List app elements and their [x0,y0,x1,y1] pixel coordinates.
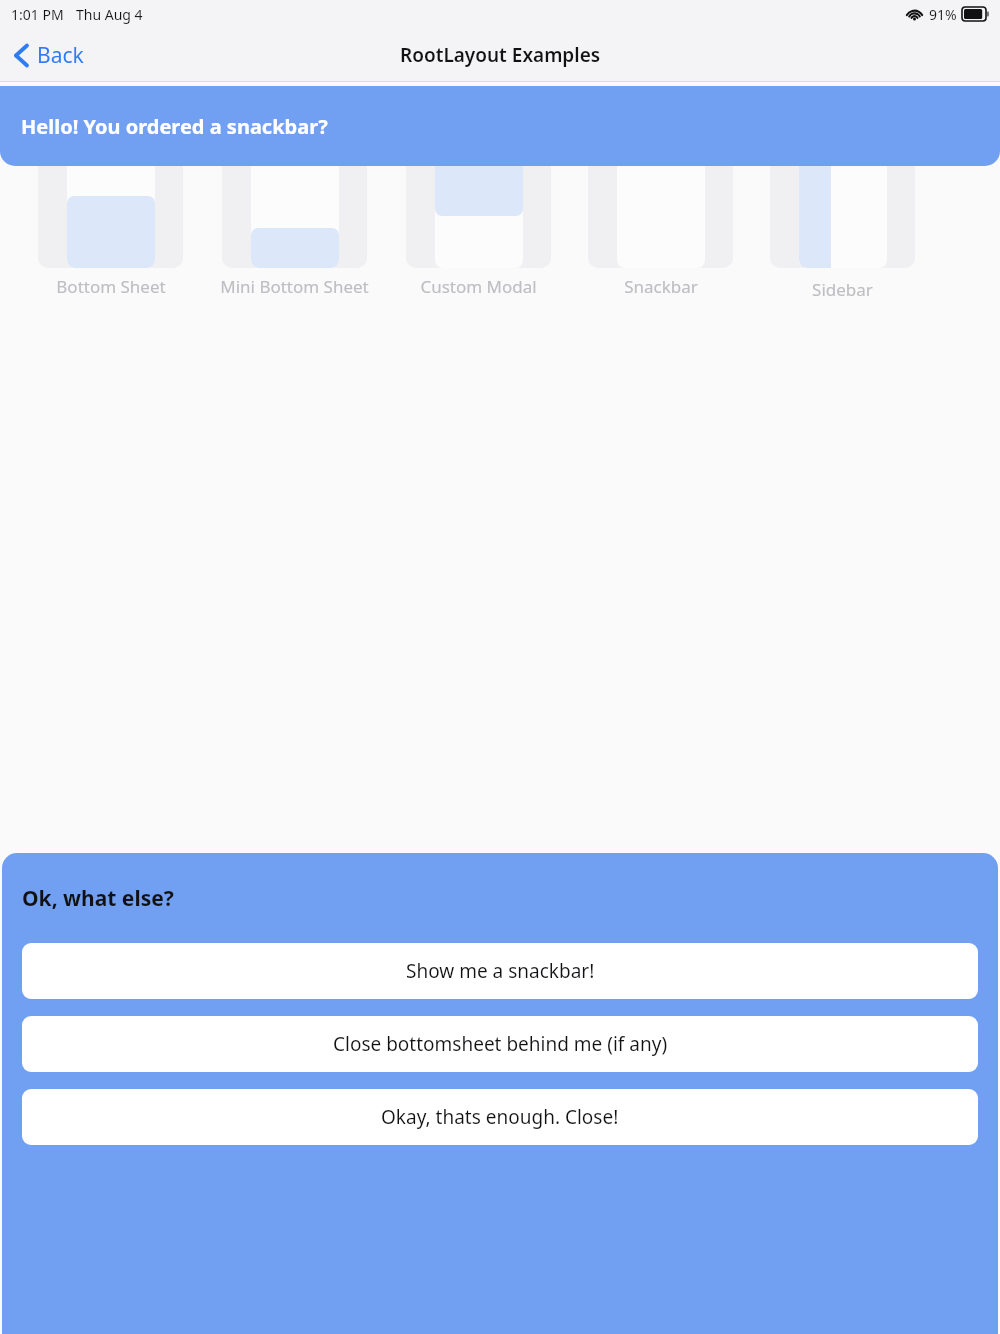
button[interactable]: Close bottomsheet behind me (if any) [22,1016,978,1072]
button[interactable] [406,148,551,268]
button[interactable] [770,148,915,268]
staticText: 91% [929,5,957,24]
button[interactable] [588,148,733,268]
button[interactable]: Back [0,33,100,78]
button[interactable]: Show me a snackbar! [22,943,978,999]
staticText: Snackbar [624,275,698,298]
staticText: Ok, what else? [22,884,174,913]
staticText: 1:01 PM [11,5,64,24]
button[interactable] [222,148,367,268]
staticText: Thu Aug 4 [76,5,143,24]
staticText: Show me a snackbar! [406,958,595,984]
staticText: Bottom Sheet [56,275,166,298]
staticText: Mini Bottom Sheet [220,275,369,298]
staticText: Sidebar [812,278,873,301]
staticText: Custom Modal [420,275,537,298]
staticText: Back [37,41,84,70]
staticText: Okay, thats enough. Close! [381,1104,619,1130]
staticText: Close bottomsheet behind me (if any) [333,1031,668,1057]
button[interactable] [38,148,183,268]
staticText: Hello! You ordered a snackbar? [21,113,328,140]
staticText: RootLayout Examples [400,42,601,68]
button[interactable]: Okay, thats enough. Close! [22,1089,978,1145]
button[interactable]: Hello! You ordered a snackbar? [0,86,1000,166]
